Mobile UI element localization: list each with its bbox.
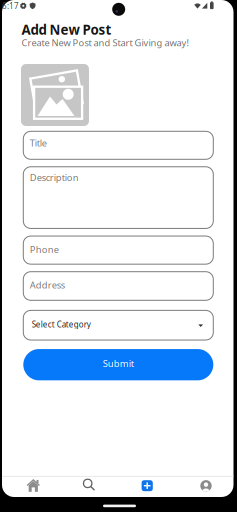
- button[interactable]: Add photo: [21, 64, 89, 126]
- staticText: Title: [30, 137, 47, 149]
- staticText: Address: [30, 279, 65, 291]
- staticText: Description: [30, 171, 79, 184]
- staticText: Phone: [30, 243, 59, 256]
- button[interactable]: Profile: [200, 480, 212, 491]
- button[interactable]: Select Category: [23, 310, 213, 340]
- staticText: Select Category: [32, 319, 91, 330]
- button[interactable]: Search: [81, 477, 97, 493]
- button[interactable]: Submit: [23, 349, 213, 380]
- staticText: 6:17: [2, 1, 19, 11]
- staticText: Submit: [103, 357, 134, 370]
- staticText: Add New Post: [21, 21, 111, 38]
- button[interactable]: Home: [24, 476, 42, 494]
- button[interactable]: Add post: [142, 480, 153, 491]
- staticText: Create New Post and Start Giving away!: [21, 36, 189, 49]
